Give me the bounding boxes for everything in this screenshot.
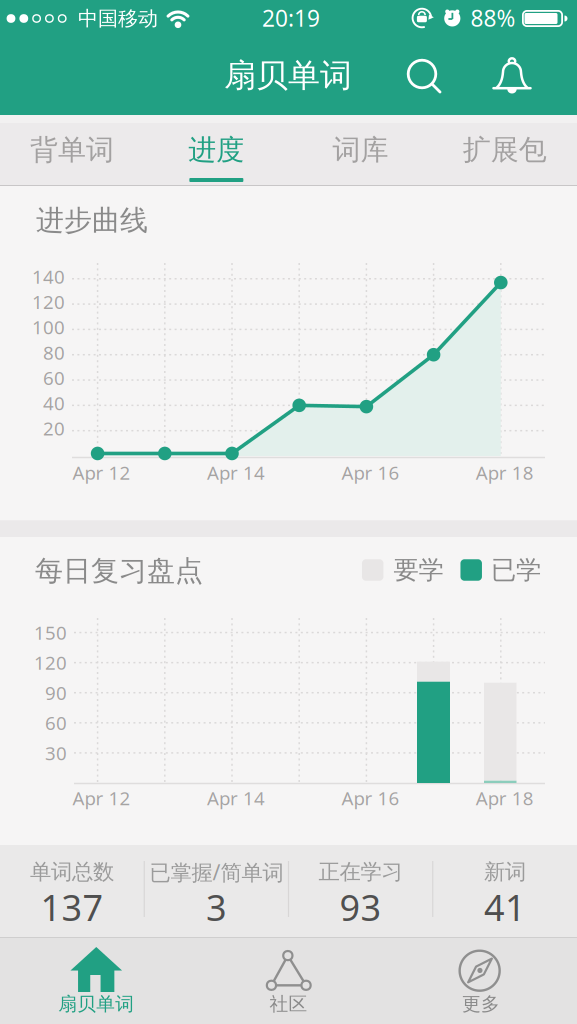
button[interactable]: 扇贝单词 xyxy=(0,938,192,1024)
staticText: 进步曲线 xyxy=(36,203,148,238)
staticText: 新词 xyxy=(484,859,526,885)
staticText: 已学 xyxy=(491,554,541,585)
staticText: 41 xyxy=(484,883,526,931)
button[interactable]: 进度 xyxy=(144,115,288,185)
staticText: 120 xyxy=(34,650,67,675)
staticText: 137 xyxy=(41,883,104,931)
staticText: Apr 14 xyxy=(207,786,265,810)
button[interactable]: 社区 xyxy=(192,938,385,1024)
staticText: 140 xyxy=(32,264,65,289)
staticText: 30 xyxy=(45,740,67,765)
button[interactable]: Search xyxy=(395,36,457,115)
staticText: Apr 18 xyxy=(476,460,534,485)
button[interactable]: Notifications xyxy=(481,36,543,115)
staticText: 扇贝单词 xyxy=(224,56,352,95)
button[interactable]: 更多 xyxy=(385,938,577,1024)
button[interactable]: 词库 xyxy=(288,115,433,185)
staticText: 背单词 xyxy=(30,133,114,167)
staticText: 88% xyxy=(470,3,515,33)
staticText: 要学 xyxy=(393,554,443,585)
staticText: 词库 xyxy=(333,133,389,167)
staticText: 93 xyxy=(340,883,382,931)
staticText: 60 xyxy=(45,710,67,735)
staticText: Apr 12 xyxy=(73,786,131,810)
staticText: 扩展包 xyxy=(463,133,547,167)
staticText: 已掌握/简单词 xyxy=(149,858,283,886)
staticText: Apr 18 xyxy=(476,786,534,810)
staticText: 20 xyxy=(43,416,65,441)
staticText: 40 xyxy=(43,391,65,415)
staticText: 进度 xyxy=(188,133,244,167)
staticText: 60 xyxy=(43,365,65,390)
staticText: 20:19 xyxy=(262,3,320,33)
staticText: Apr 14 xyxy=(207,460,265,485)
staticText: 120 xyxy=(32,289,65,314)
staticText: 100 xyxy=(32,315,65,339)
button[interactable]: 扩展包 xyxy=(433,115,577,185)
staticText: Apr 16 xyxy=(341,786,399,810)
staticText: Apr 12 xyxy=(73,460,131,485)
staticText: 80 xyxy=(43,340,65,365)
staticText: 更多 xyxy=(462,992,500,1015)
button[interactable]: 背单词 xyxy=(0,115,144,185)
staticText: 中国移动 xyxy=(78,6,158,31)
staticText: 单词总数 xyxy=(30,859,114,885)
staticText: 每日复习盘点 xyxy=(35,554,203,588)
staticText: 正在学习 xyxy=(319,859,403,885)
staticText: 3 xyxy=(206,883,227,931)
staticText: 90 xyxy=(45,680,67,705)
staticText: Apr 16 xyxy=(341,460,399,485)
staticText: 150 xyxy=(34,620,67,645)
staticText: 扇贝单词 xyxy=(58,992,134,1015)
staticText: 社区 xyxy=(270,992,308,1015)
